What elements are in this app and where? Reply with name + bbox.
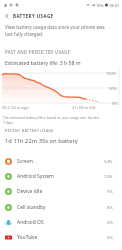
staticText: last fully charged.	[5, 31, 44, 37]
staticText: 6%	[107, 220, 113, 226]
button[interactable]: Navigate up	[0, 10, 13, 22]
button[interactable]: Android OS	[0, 215, 122, 230]
staticText: 0%	[112, 101, 118, 106]
staticText: Screen	[17, 158, 33, 165]
staticText: The estimated battery life is based on y…	[3, 115, 100, 119]
button[interactable]: Cell standby	[0, 200, 122, 215]
staticText: YouTube	[17, 234, 38, 241]
staticText: Android OS	[17, 219, 44, 226]
staticText: 6%	[107, 235, 113, 241]
staticText: Android System	[17, 173, 55, 180]
staticText: BATTERY USAGE	[13, 13, 54, 19]
staticText: 50%	[109, 86, 117, 91]
staticText: 34%	[104, 159, 113, 165]
button[interactable]: Device idle	[0, 184, 122, 199]
staticText: 7 days.	[3, 120, 14, 124]
staticText: 18:01	[109, 3, 120, 8]
staticText: View battery usage data since your phone…	[5, 24, 105, 30]
staticText: Cell standby	[17, 204, 46, 211]
staticText: Estimated battery life: 3 h 58 m	[5, 59, 81, 66]
staticText: PAST AND PREDICTED USAGE	[5, 49, 71, 55]
button[interactable]: YouTube	[0, 230, 122, 245]
staticText: 8%	[107, 205, 113, 211]
staticText: Device idle	[17, 188, 43, 195]
staticText: 100%	[106, 71, 117, 76]
staticText: 35 h 22 m ago	[2, 105, 29, 110]
staticText: 1d 11h 22m 35s on battery	[5, 137, 78, 145]
staticText: 3 h 58 m left	[72, 105, 96, 110]
staticText: 16%	[96, 3, 104, 8]
staticText: 12%	[104, 174, 113, 180]
staticText: 9%	[107, 189, 113, 195]
button[interactable]: Screen	[0, 154, 122, 169]
button[interactable]: Android System	[0, 169, 122, 184]
staticText: RECENT BATTERY USAGE	[5, 128, 54, 133]
